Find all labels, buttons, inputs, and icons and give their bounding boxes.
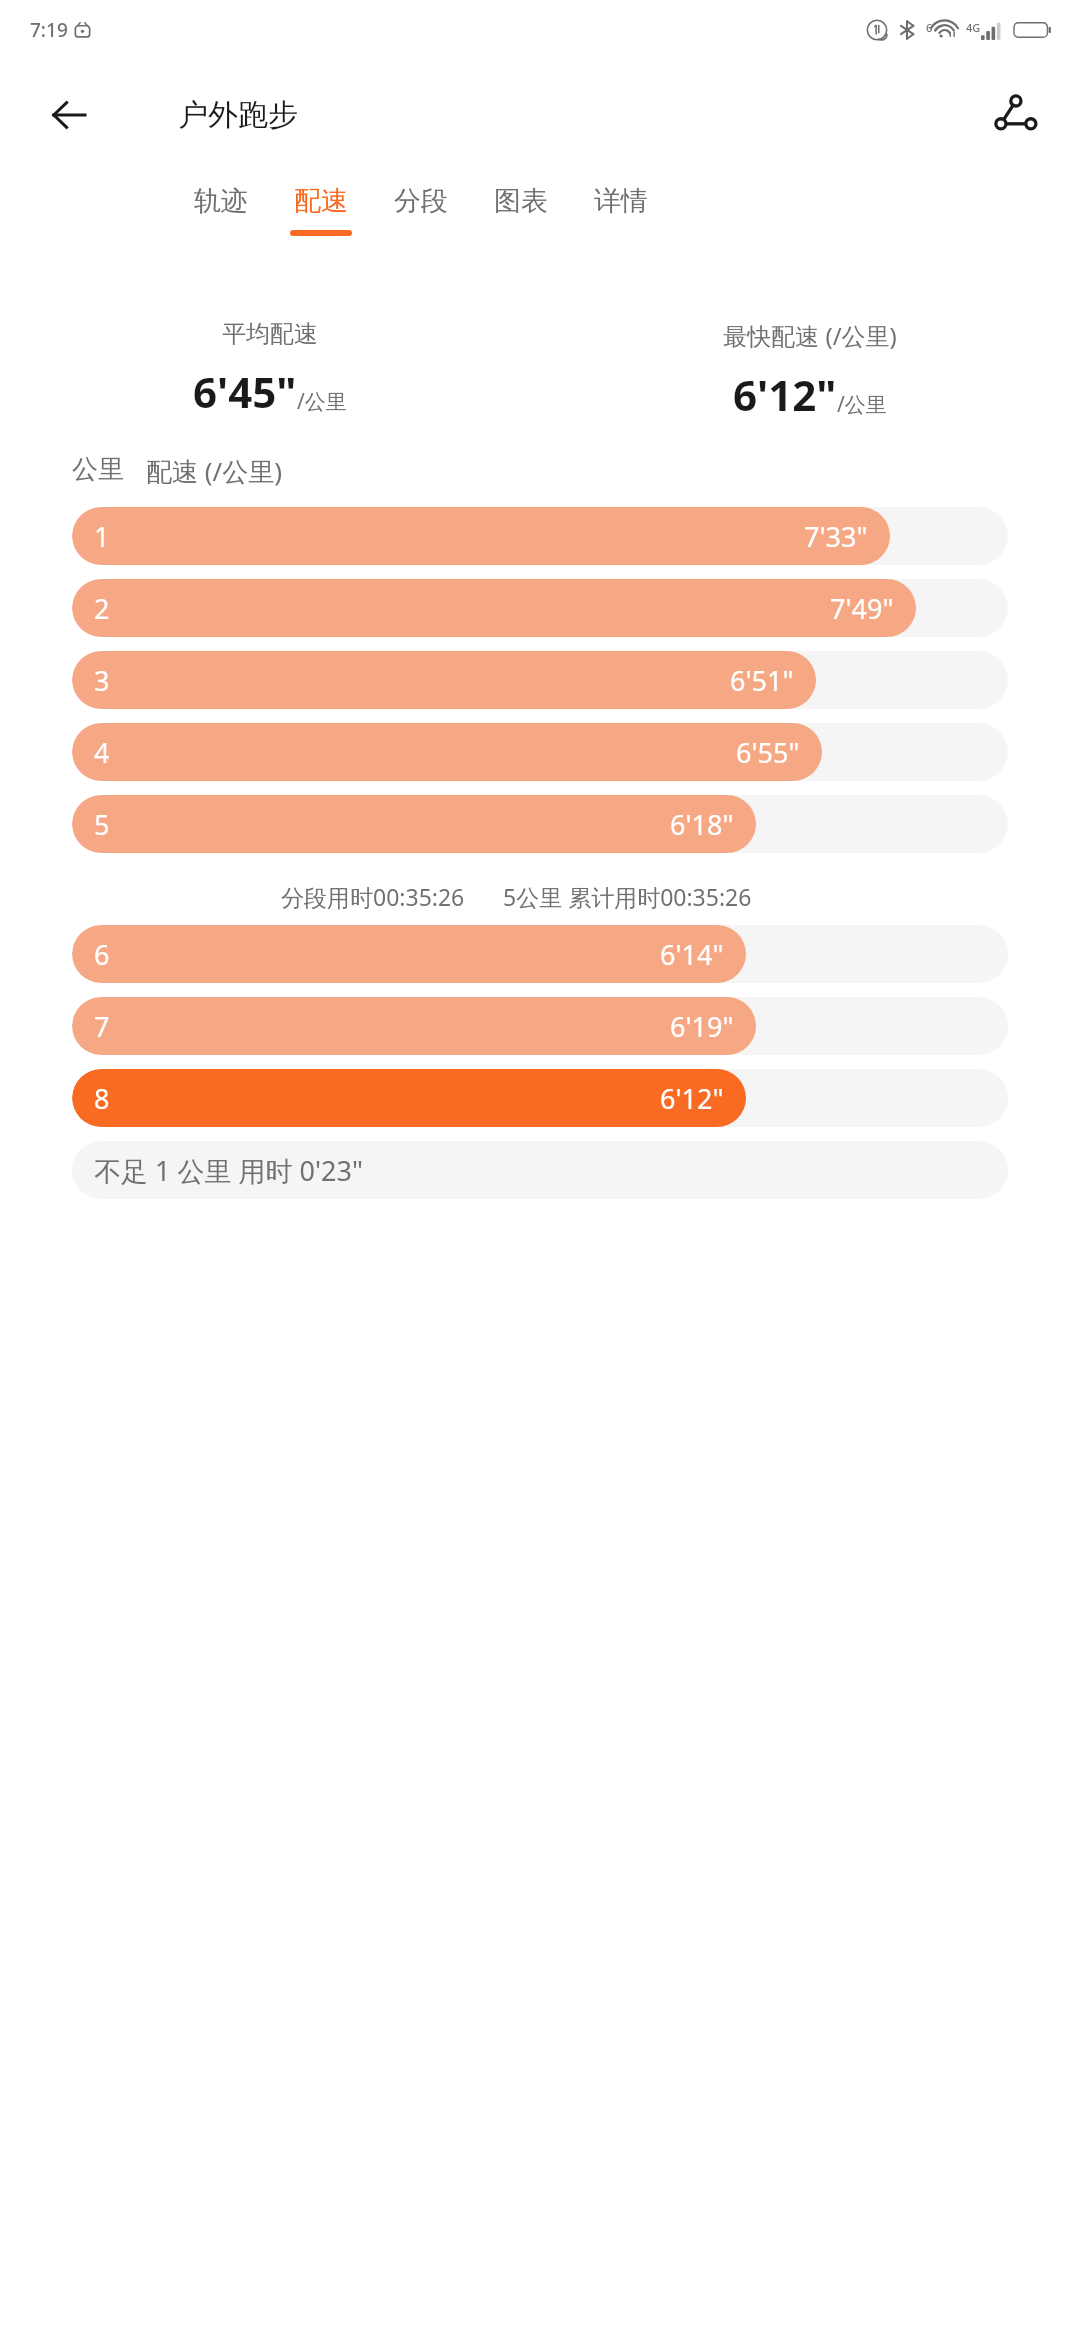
staticText: 户外跑步 [178,96,298,134]
staticText: 5 [94,806,110,843]
staticText: 分段 [394,184,448,218]
staticText: 7'33" [804,518,868,555]
staticText: 7 [94,1008,110,1045]
staticText: 8 [94,1080,110,1117]
staticText: 6'14" [660,936,724,973]
button[interactable]: 1 [72,507,1008,565]
staticText: 4 [94,734,110,771]
staticText: 配速 (/公里) [146,453,283,489]
staticText: 最快配速 (/公里) [723,319,897,352]
staticText: 图表 [494,184,548,218]
button[interactable]: 不足 1 公里 用时 0'23" [72,1141,1008,1199]
staticText: 6'45" [193,363,297,420]
button[interactable]: 6 [72,925,1008,983]
staticText: 6'12" [733,366,837,423]
button[interactable]: 7 [72,997,1008,1055]
staticText: 5公里 累计用时00:35:26 [503,881,752,912]
button[interactable]: 轨迹 [186,184,256,236]
staticText: 配速 [294,184,348,218]
staticText: 6 [926,20,933,35]
button[interactable]: 5 [72,795,1008,853]
staticText: 2 [94,590,110,627]
staticText: 6'19" [670,1008,734,1045]
staticText: 6'12" [660,1080,724,1117]
staticText: 3 [94,662,110,699]
button[interactable]: Share [986,86,1044,144]
button[interactable]: 4 [72,723,1008,781]
staticText: 7:19 [30,17,68,43]
staticText: 分段用时00:35:26 [281,881,465,912]
staticText: 1 [94,518,110,555]
staticText: 7'49" [830,590,894,627]
staticText: 公里 [72,453,124,486]
button[interactable]: 详情 [586,184,656,236]
staticText: 6 [94,936,110,973]
staticText: 平均配速 [222,319,318,349]
staticText: 详情 [594,184,648,218]
button[interactable]: 图表 [486,184,556,236]
staticText: 不足 1 公里 用时 0'23" [94,1152,363,1189]
staticText: /公里 [297,387,347,416]
staticText: 轨迹 [194,184,248,218]
staticText: 6'51" [730,662,794,699]
button[interactable]: 3 [72,651,1008,709]
button[interactable]: Back [42,88,96,142]
staticText: /公里 [837,390,887,419]
staticText: 6'55" [736,734,800,771]
button[interactable]: 2 [72,579,1008,637]
button[interactable]: 配速 [286,184,356,236]
staticText: 4G [966,20,981,35]
staticText: 6'18" [670,806,734,843]
button[interactable]: 8 [72,1069,1008,1127]
button[interactable]: 分段 [386,184,456,236]
